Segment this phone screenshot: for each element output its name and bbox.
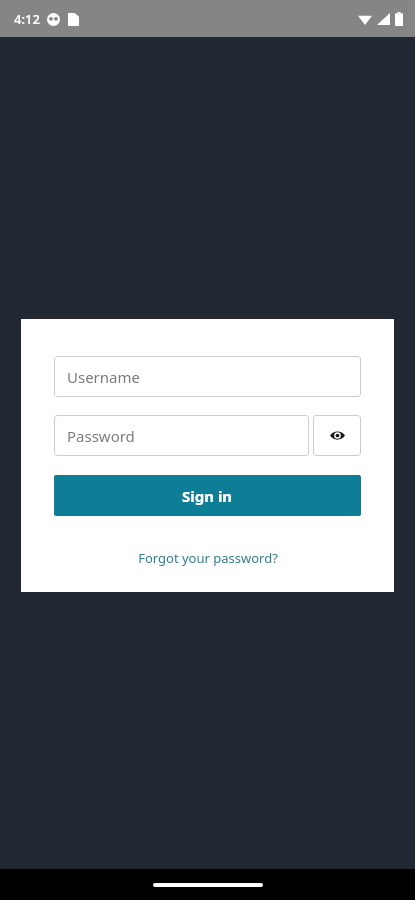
staticText: 4:12 (14, 10, 40, 28)
staticText: Forgot your password? (138, 549, 278, 567)
staticText: Username (67, 367, 140, 387)
button[interactable]: Password (54, 415, 309, 456)
button[interactable]: Show password (313, 415, 361, 456)
button[interactable]: Forgot your password? (54, 549, 361, 567)
staticText: Password (67, 426, 135, 446)
button[interactable]: Username (54, 356, 361, 397)
button[interactable]: Sign in (54, 475, 361, 516)
staticText: Sign in (182, 486, 233, 506)
